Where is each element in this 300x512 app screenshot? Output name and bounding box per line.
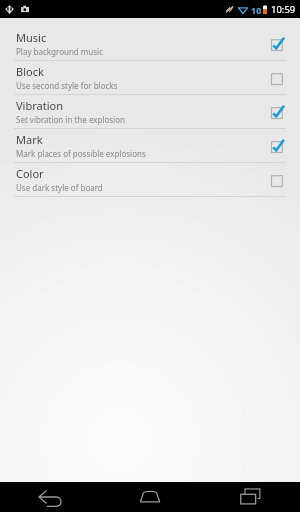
- staticText: 10:59: [271, 3, 296, 16]
- button[interactable]: Block: [0, 61, 300, 94]
- button[interactable]: Recent apps: [200, 482, 300, 512]
- staticText: 10: [251, 4, 262, 16]
- button[interactable]: Unchecked: [268, 69, 286, 87]
- button[interactable]: Music: [0, 27, 300, 60]
- staticText: Vibration: [16, 98, 63, 113]
- button[interactable]: Unchecked: [268, 171, 286, 189]
- staticText: Set vibration in the explosion: [16, 114, 125, 125]
- button[interactable]: Home: [100, 482, 200, 512]
- staticText: Play background music: [16, 46, 104, 57]
- staticText: Music: [16, 30, 47, 45]
- staticText: Color: [16, 166, 44, 181]
- staticText: Mark places of possible explosions: [16, 148, 146, 159]
- staticText: Block: [16, 64, 44, 79]
- button[interactable]: Back: [0, 482, 100, 512]
- staticText: Use second style for blocks: [16, 80, 118, 91]
- button[interactable]: Checked: [268, 137, 286, 155]
- button[interactable]: Vibration: [0, 95, 300, 128]
- button[interactable]: Mark: [0, 129, 300, 162]
- staticText: Use dark style of board: [16, 182, 103, 193]
- staticText: Mark: [16, 132, 43, 147]
- button[interactable]: Checked: [268, 103, 286, 121]
- button[interactable]: Checked: [268, 35, 286, 53]
- button[interactable]: Color: [0, 163, 300, 196]
